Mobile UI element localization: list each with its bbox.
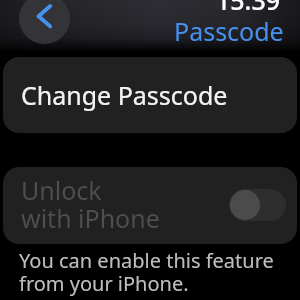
button[interactable]: Change Passcode bbox=[3, 57, 297, 133]
staticText: 15:39 bbox=[216, 0, 281, 17]
staticText: Unlock with iPhone bbox=[21, 173, 160, 235]
staticText: Change Passcode bbox=[21, 78, 228, 112]
button[interactable]: Back bbox=[19, 0, 70, 44]
button[interactable]: Unlock with iPhone bbox=[3, 167, 297, 244]
staticText: You can enable this feature from your iP… bbox=[19, 247, 274, 297]
staticText: Passcode bbox=[174, 14, 284, 48]
button[interactable]: Unlock with iPhone toggle bbox=[229, 189, 286, 221]
